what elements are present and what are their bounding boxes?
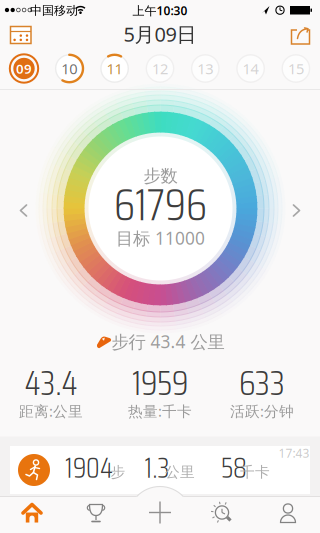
staticText: 1959 xyxy=(132,356,188,410)
staticText: 千卡 xyxy=(240,463,270,481)
button[interactable]: May 9 xyxy=(7,51,41,85)
staticText: 09 xyxy=(16,60,32,77)
button[interactable]: May 14 xyxy=(234,51,268,85)
staticText: 43.4 xyxy=(24,356,77,410)
button[interactable]: Activity details xyxy=(10,446,310,494)
button[interactable]: Profile xyxy=(256,497,320,533)
staticText: 步数 xyxy=(143,165,177,187)
button[interactable]: May 15 xyxy=(279,51,313,85)
staticText: 633 xyxy=(239,356,285,410)
staticText: 61796 xyxy=(114,170,207,240)
staticText: 热量:千卡 xyxy=(128,401,192,421)
staticText: 14 xyxy=(243,59,259,78)
staticText: 距离:公里 xyxy=(19,401,83,421)
button[interactable]: Discover xyxy=(192,497,256,533)
button[interactable]: May 11 xyxy=(98,51,132,85)
staticText: 步 xyxy=(110,463,125,481)
button[interactable]: Rankings xyxy=(64,497,128,533)
staticText: 公里 xyxy=(165,463,195,481)
button[interactable]: May 13 xyxy=(188,51,222,85)
staticText: 11 xyxy=(107,59,123,78)
button[interactable]: Add activity xyxy=(128,487,192,533)
staticText: 1.3 xyxy=(144,446,169,490)
staticText: 12 xyxy=(152,59,168,78)
button[interactable]: May 12 xyxy=(143,51,177,85)
staticText: 活跃:分钟 xyxy=(230,401,294,421)
staticText: 17:43 xyxy=(278,445,309,461)
button[interactable]: Previous day xyxy=(8,188,38,232)
staticText: 上午10:30 xyxy=(132,2,187,18)
staticText: 步行 43.4 公里 xyxy=(111,330,224,353)
staticText: 中国移动 xyxy=(30,3,78,18)
staticText: 58 xyxy=(221,446,247,490)
staticText: 10 xyxy=(61,59,77,78)
button[interactable]: Next day xyxy=(282,188,312,232)
staticText: 1904 xyxy=(65,446,113,490)
button[interactable]: Calendar xyxy=(0,13,44,57)
staticText: 5月09日 xyxy=(123,21,196,47)
button[interactable]: Share xyxy=(278,15,320,59)
staticText: 15 xyxy=(288,59,304,78)
button[interactable]: Home xyxy=(0,497,64,533)
staticText: 目标 11000 xyxy=(116,226,205,249)
button[interactable]: May 10 xyxy=(52,51,86,85)
staticText: 13 xyxy=(197,59,213,78)
